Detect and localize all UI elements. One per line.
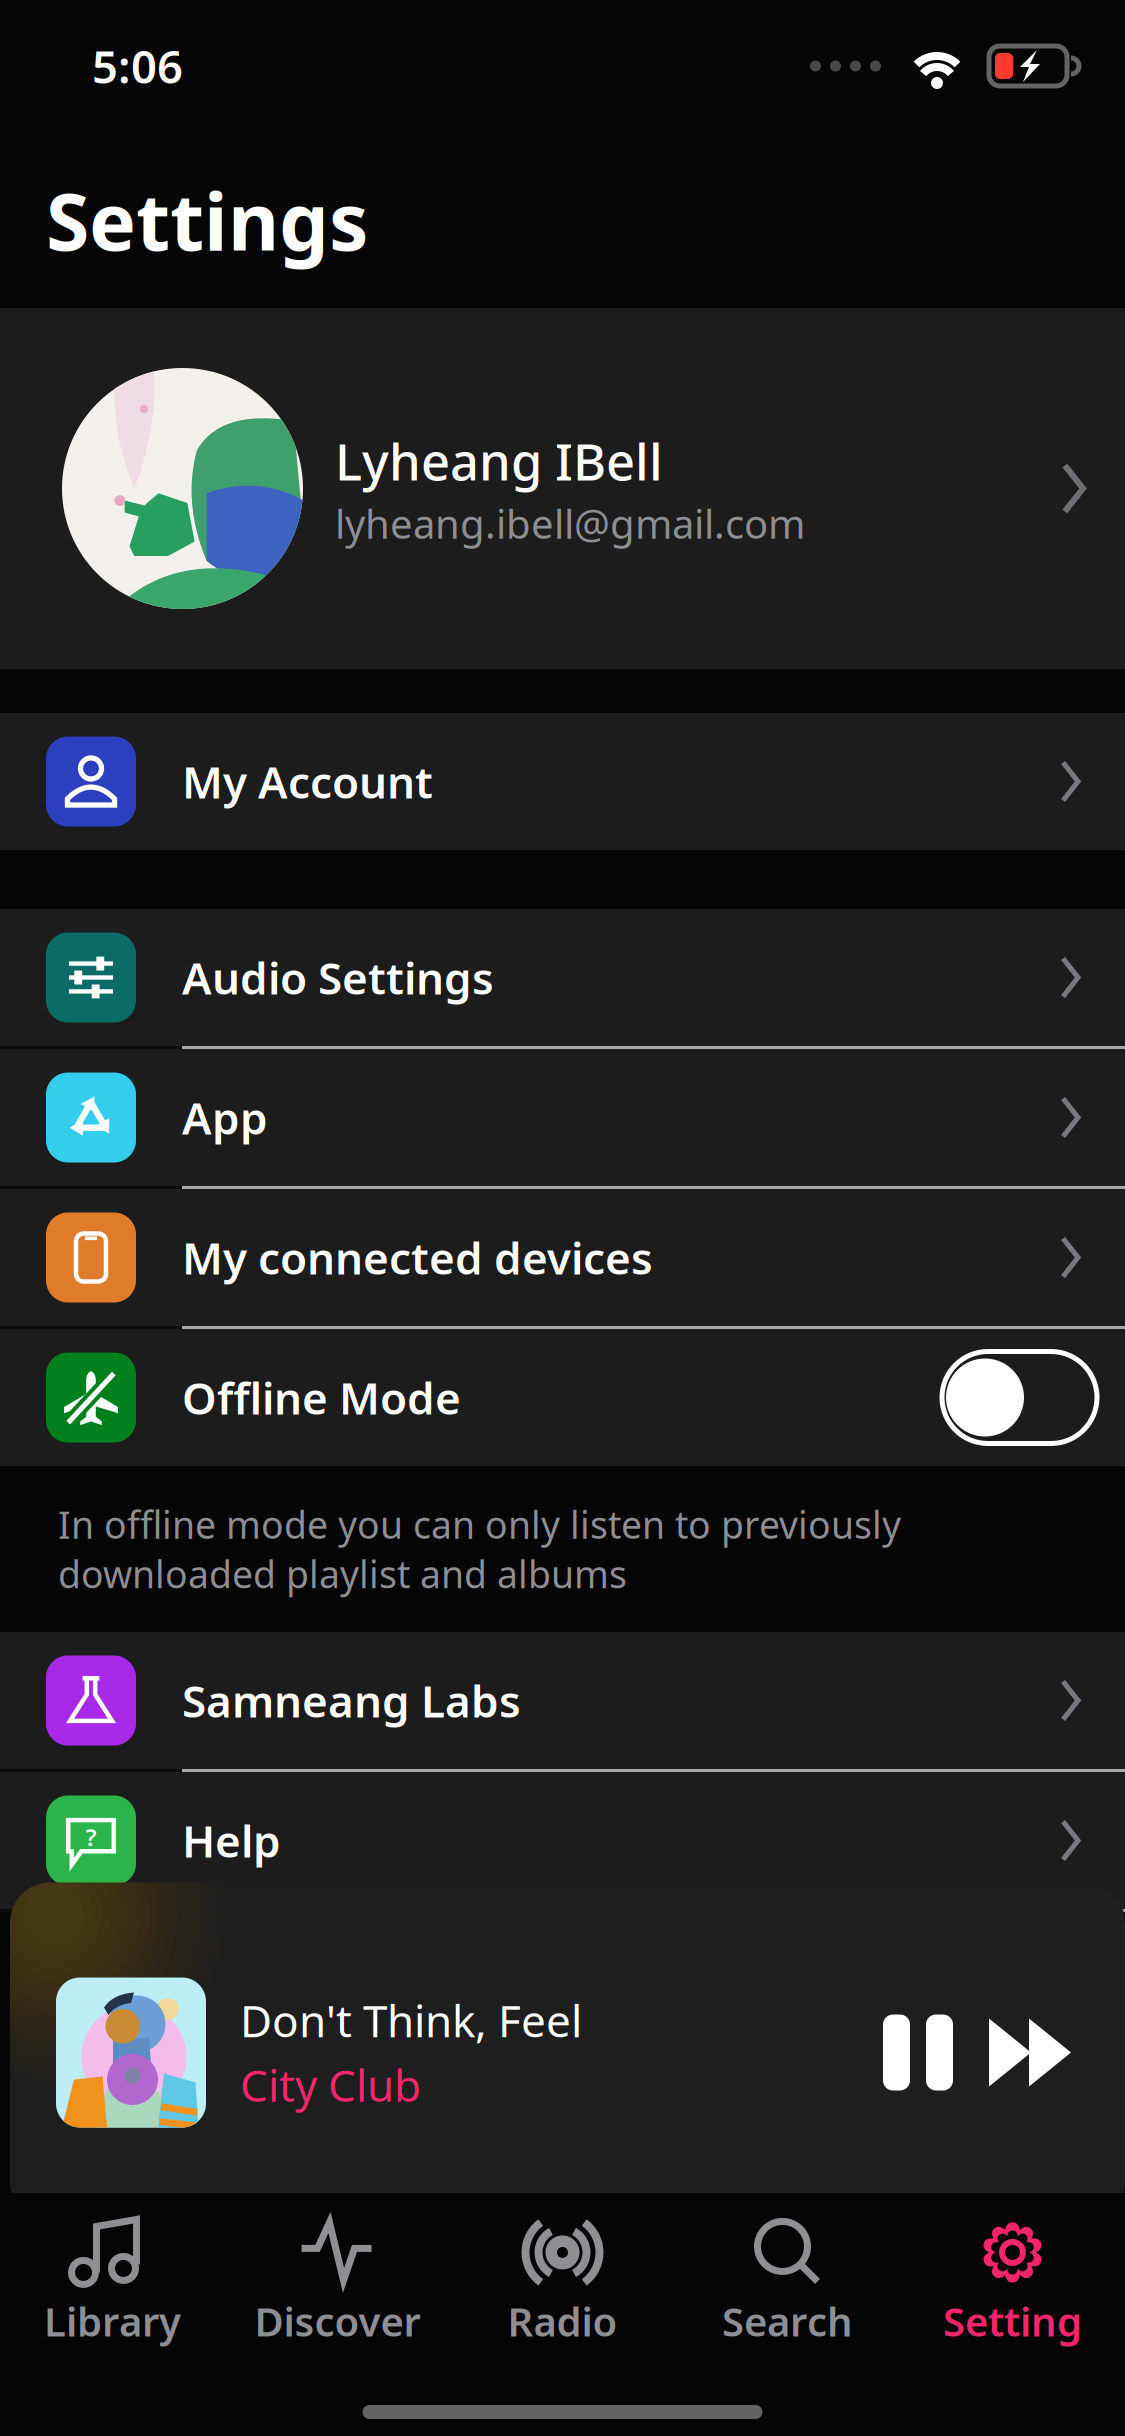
staticText: My Account [182, 752, 433, 811]
button[interactable]: Lyheang IBell [0, 308, 1125, 669]
staticText: Audio Settings [182, 948, 494, 1007]
staticText: ? [85, 1821, 96, 1853]
button[interactable]: Offline Mode [942, 1351, 1125, 1443]
button[interactable]: My Account [0, 713, 1125, 850]
button[interactable]: Search [675, 2207, 900, 2357]
staticText: Discover [254, 2294, 420, 2347]
staticText: City Club [240, 2055, 421, 2114]
button[interactable]: ? [0, 1772, 1125, 1909]
button[interactable]: Library [0, 2207, 225, 2357]
staticText: Samneang Labs [182, 1671, 521, 1730]
button[interactable]: My connected devices [0, 1189, 1125, 1326]
button[interactable]: Next [973, 1987, 1089, 2117]
button[interactable]: Radio [450, 2207, 675, 2357]
button[interactable]: Samneang Labs [0, 1632, 1125, 1769]
staticText: App [182, 1088, 268, 1147]
staticText: Setting [943, 2294, 1082, 2347]
staticText: Library [44, 2294, 181, 2347]
staticText: Search [722, 2294, 853, 2347]
staticText: Help [182, 1811, 281, 1870]
staticText: lyheang.ibell@gmail.com [335, 497, 805, 550]
button[interactable]: Discover [225, 2207, 450, 2357]
button[interactable]: App [0, 1049, 1125, 1186]
staticText: Radio [507, 2294, 617, 2347]
staticText: In offline mode you can only listen to p… [58, 1499, 901, 1599]
staticText: Offline Mode [182, 1368, 461, 1427]
staticText: Don't Think, Feel [240, 1991, 582, 2049]
staticText: 5:06 [92, 36, 183, 96]
button[interactable]: Audio Settings [0, 909, 1125, 1046]
button[interactable]: Setting [900, 2207, 1125, 2357]
button[interactable]: Pause [863, 1987, 973, 2117]
staticText: My connected devices [182, 1228, 653, 1287]
staticText: Lyheang IBell [335, 427, 663, 495]
staticText: Settings [46, 168, 368, 272]
